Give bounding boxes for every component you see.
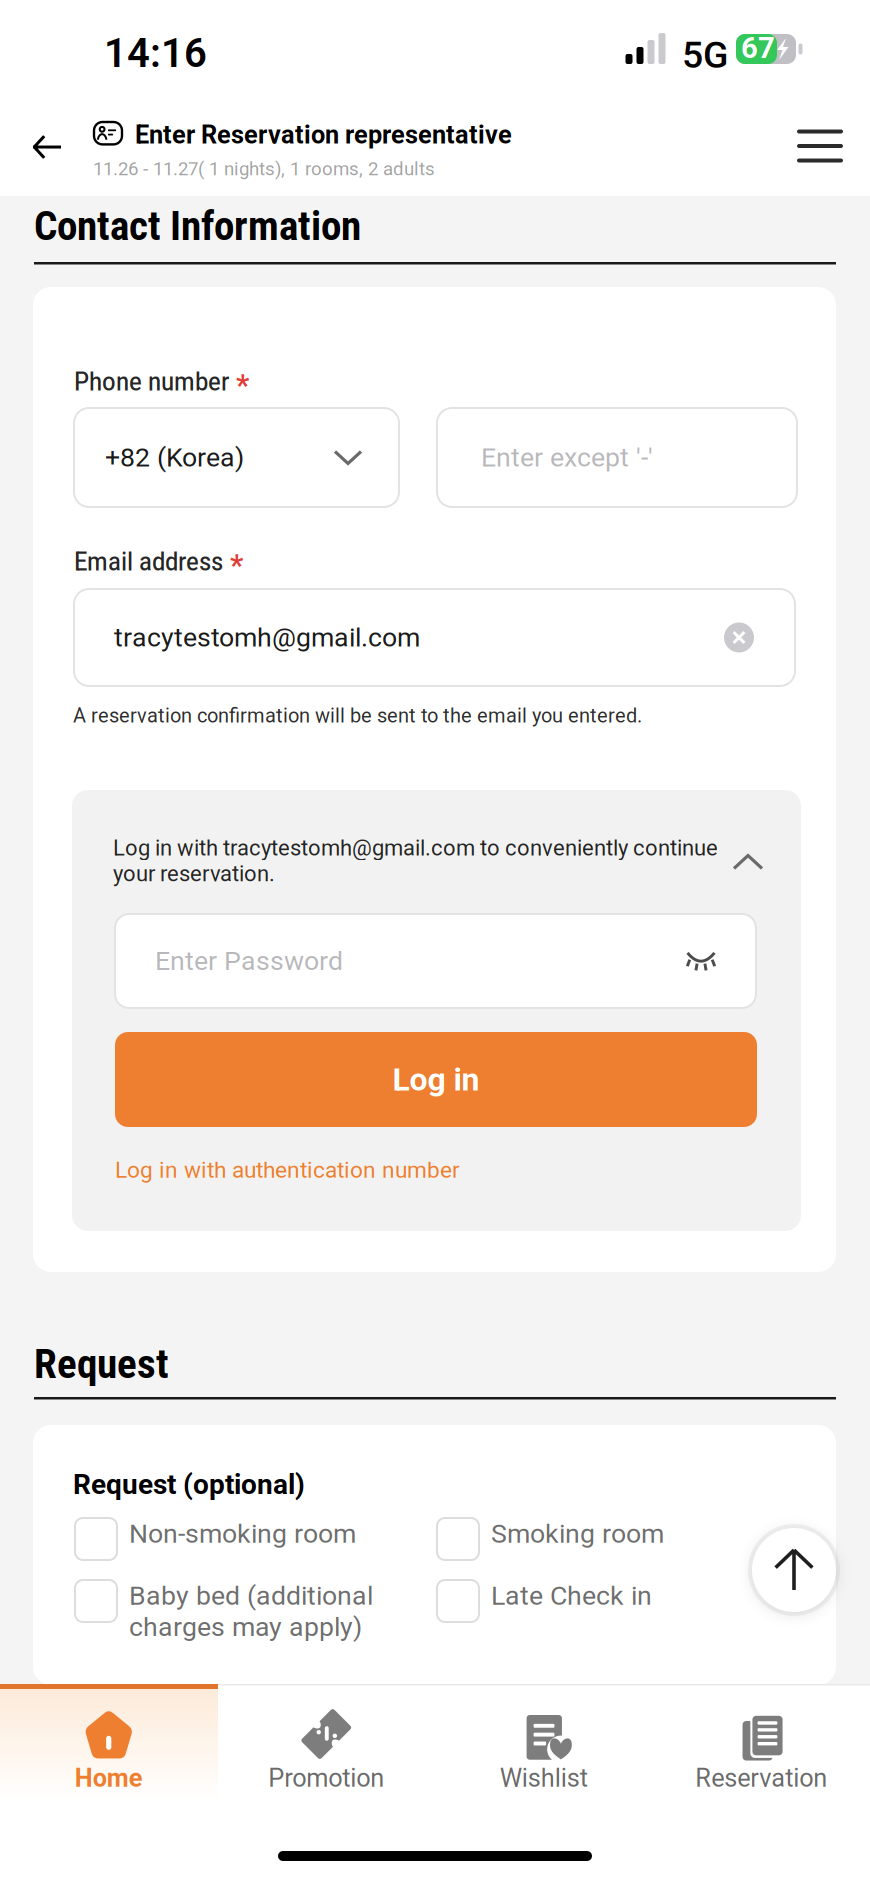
staticText: 11.26 - 11.27( 1 nights), 1 rooms, 2 adu… bbox=[93, 158, 435, 180]
staticText: 5G bbox=[682, 33, 728, 77]
staticText: Baby bed (additional charges may apply) bbox=[129, 1580, 373, 1642]
staticText: Promotion bbox=[268, 1763, 384, 1793]
button[interactable]: Log in bbox=[115, 1032, 757, 1127]
button[interactable]: Enter Password bbox=[115, 914, 756, 1008]
staticText: * bbox=[236, 368, 249, 402]
button[interactable]: Wishlist bbox=[435, 1684, 652, 1800]
button[interactable]: Promotion bbox=[217, 1684, 435, 1800]
staticText: Reservation bbox=[695, 1763, 827, 1793]
staticText: Phone number bbox=[74, 367, 229, 397]
staticText: Enter except '-' bbox=[481, 442, 653, 473]
button[interactable]: Back bbox=[7, 107, 87, 187]
button[interactable]: +82 (Korea) bbox=[74, 408, 399, 507]
staticText: Log in with authentication number bbox=[115, 1157, 460, 1183]
button[interactable]: Reservation bbox=[652, 1684, 870, 1800]
staticText: 67 bbox=[741, 31, 775, 65]
staticText: Non-smoking room bbox=[129, 1518, 356, 1549]
button[interactable]: Log in with authentication number bbox=[115, 1152, 460, 1188]
staticText: Smoking room bbox=[491, 1518, 664, 1549]
staticText: Request (optional) bbox=[73, 1468, 305, 1501]
button[interactable]: Home bbox=[0, 1684, 217, 1800]
staticText: Enter Password bbox=[155, 945, 343, 977]
staticText: Contact Information bbox=[34, 203, 361, 250]
staticText: Wishlist bbox=[500, 1763, 588, 1793]
button[interactable]: Scroll to top bbox=[748, 1524, 840, 1616]
button[interactable]: Smoking room bbox=[437, 1518, 751, 1560]
staticText: Enter Reservation representative bbox=[135, 120, 512, 150]
button[interactable]: Baby bed (additional charges may apply) bbox=[75, 1580, 381, 1642]
button[interactable]: Menu bbox=[780, 106, 860, 186]
button[interactable]: Collapse bbox=[722, 836, 774, 888]
staticText: +82 (Korea) bbox=[105, 442, 244, 473]
staticText: Late Check in bbox=[491, 1580, 652, 1611]
staticText: Request bbox=[34, 1341, 169, 1388]
staticText: 14:16 bbox=[104, 30, 207, 77]
button[interactable]: Late Check in bbox=[437, 1580, 751, 1622]
staticText: Log in bbox=[392, 1061, 479, 1098]
staticText: tracytestomh@gmail.com bbox=[114, 622, 420, 653]
staticText: * bbox=[230, 548, 243, 582]
button[interactable]: Enter except '-' bbox=[437, 408, 797, 507]
button[interactable]: tracytestomh@gmail.com bbox=[74, 589, 795, 686]
button[interactable]: Non-smoking room bbox=[75, 1518, 389, 1560]
staticText: A reservation confirmation will be sent … bbox=[73, 704, 642, 727]
staticText: Home bbox=[75, 1763, 143, 1793]
staticText: Log in with tracytestomh@gmail.com to co… bbox=[113, 835, 718, 887]
staticText: Email address bbox=[74, 547, 223, 577]
